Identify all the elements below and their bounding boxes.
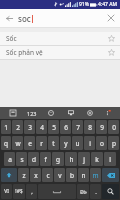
staticText: n [81,171,86,180]
button[interactable]: !#$ [13,184,25,199]
button[interactable]: 9 [96,120,107,134]
staticText: 4 [40,123,44,132]
button[interactable]: Đi» [77,184,89,199]
staticText: m [92,171,99,180]
button[interactable]: 4 [36,120,47,134]
button[interactable]: 1 [1,120,11,134]
button[interactable]: n [78,168,89,182]
button[interactable]: 3 [24,120,35,134]
button[interactable]: Bookmark Sốc phản vệ [106,47,117,58]
button[interactable]: e [24,136,35,150]
button[interactable]: v [54,168,65,182]
staticText: o [100,139,104,148]
staticText: 6 [64,123,68,132]
button[interactable]: b [66,168,77,182]
staticText: v [58,171,62,180]
staticText: 9 [100,123,104,132]
button[interactable]: Bookmark Sốc [106,33,117,44]
button[interactable]: Backspace [102,168,119,182]
button[interactable]: Clear search [102,9,120,27]
staticText: x [34,171,38,180]
button[interactable]: Sticker [65,107,77,119]
staticText: Đi» [80,189,87,195]
button[interactable]: Sốc [0,32,120,45]
button[interactable]: j [78,152,90,166]
button[interactable]: w [12,136,23,150]
staticText: w [15,139,21,148]
button[interactable]: s [16,152,27,166]
staticText: 91% [79,1,89,8]
button[interactable]: g [52,152,64,166]
button[interactable]: y [60,136,71,150]
staticText: t [52,139,55,148]
staticText: y [64,139,68,148]
staticText: 7 [76,123,80,132]
button[interactable]: 2 [12,120,23,134]
staticText: j [83,155,85,164]
staticText: 0 [112,123,116,132]
staticText: 5 [52,123,56,132]
staticText: 4:47 AM [98,1,118,8]
button[interactable]: p [108,136,119,150]
button[interactable]: d [28,152,39,166]
button[interactable]: Keyboard layout [7,107,19,119]
staticText: , [31,188,33,196]
button[interactable]: More options [103,107,113,119]
staticText: q [4,139,8,148]
button[interactable]: 0 [108,120,119,134]
button[interactable]: 7 [72,120,83,134]
staticText: k [95,155,99,164]
button[interactable]: h [65,152,77,166]
button[interactable]: f [40,152,51,166]
button[interactable]: . [90,184,101,199]
staticText: l [109,155,111,164]
staticText: 2 [16,123,20,132]
button[interactable]: Sốc phản vệ [0,46,120,59]
button[interactable]: x [30,168,41,182]
button[interactable]: z [18,168,29,182]
button[interactable]: Space [38,184,76,199]
button[interactable]: Shift [1,168,17,182]
staticText: d [32,155,36,164]
staticText: 123 [27,110,37,117]
staticText: i [89,139,91,148]
staticText: p [112,139,116,148]
button[interactable]: VI [1,184,12,199]
button[interactable]: i [84,136,95,150]
staticText: VI [4,188,9,195]
button[interactable]: r [36,136,47,150]
staticText: g [56,155,60,164]
staticText: u [75,139,80,148]
button[interactable]: k [91,152,103,166]
button[interactable]: a [4,152,15,166]
staticText: e [28,139,32,148]
button[interactable]: Back [0,9,18,27]
button[interactable]: c [42,168,53,182]
staticText: 3 [28,123,32,132]
button[interactable]: u [72,136,83,150]
button[interactable]: Settings [84,107,96,119]
staticText: h [69,155,74,164]
button[interactable]: Search [102,184,119,199]
button[interactable]: o [96,136,107,150]
staticText: c [46,171,50,180]
staticText: b [70,171,74,180]
staticText: Sốc phản vệ [6,48,106,57]
staticText: . [95,188,97,196]
staticText: a [8,155,12,164]
button[interactable]: t [48,136,59,150]
button[interactable]: l [104,152,116,166]
button[interactable]: m [90,168,101,182]
button[interactable]: 6 [60,120,71,134]
button[interactable]: , [26,184,37,199]
button[interactable]: 8 [84,120,95,134]
staticText: soc [18,13,31,24]
button[interactable]: q [1,136,11,150]
staticText: 1 [4,123,8,132]
staticText: 8 [88,123,92,132]
button[interactable]: 5 [48,120,59,134]
staticText: Sốc [6,34,106,43]
button[interactable]: Emoji [45,107,57,119]
staticText: z [22,171,26,180]
button[interactable]: Numbers [26,107,38,119]
